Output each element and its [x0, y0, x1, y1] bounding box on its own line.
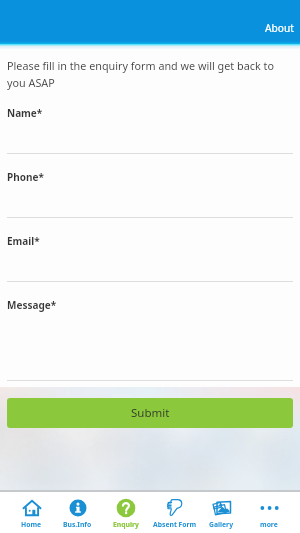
- staticText: About: [265, 21, 294, 35]
- staticText: Phone*: [7, 170, 44, 184]
- button[interactable]: Gallery: [198, 490, 245, 533]
- staticText: Gallery: [209, 520, 234, 529]
- button[interactable]: Submit: [7, 398, 293, 428]
- staticText: Email*: [7, 234, 40, 248]
- staticText: Message*: [7, 298, 57, 312]
- staticText: Bus.Info: [63, 520, 92, 529]
- button[interactable]: more: [245, 490, 292, 533]
- button[interactable]: About: [251, 17, 300, 41]
- button[interactable]: Bus.Info: [54, 490, 101, 533]
- button[interactable]: Home: [8, 490, 55, 533]
- staticText: Absent Form: [153, 520, 197, 529]
- button[interactable]: Absent Form: [151, 490, 198, 533]
- staticText: Enquiry: [113, 520, 139, 529]
- staticText: Submit: [131, 405, 170, 421]
- staticText: Name*: [7, 106, 43, 120]
- staticText: Home: [21, 520, 42, 529]
- staticText: more: [260, 520, 278, 529]
- button[interactable]: Enquiry: [102, 490, 149, 533]
- staticText: Please fill in the enquiry form and we w…: [7, 58, 274, 90]
